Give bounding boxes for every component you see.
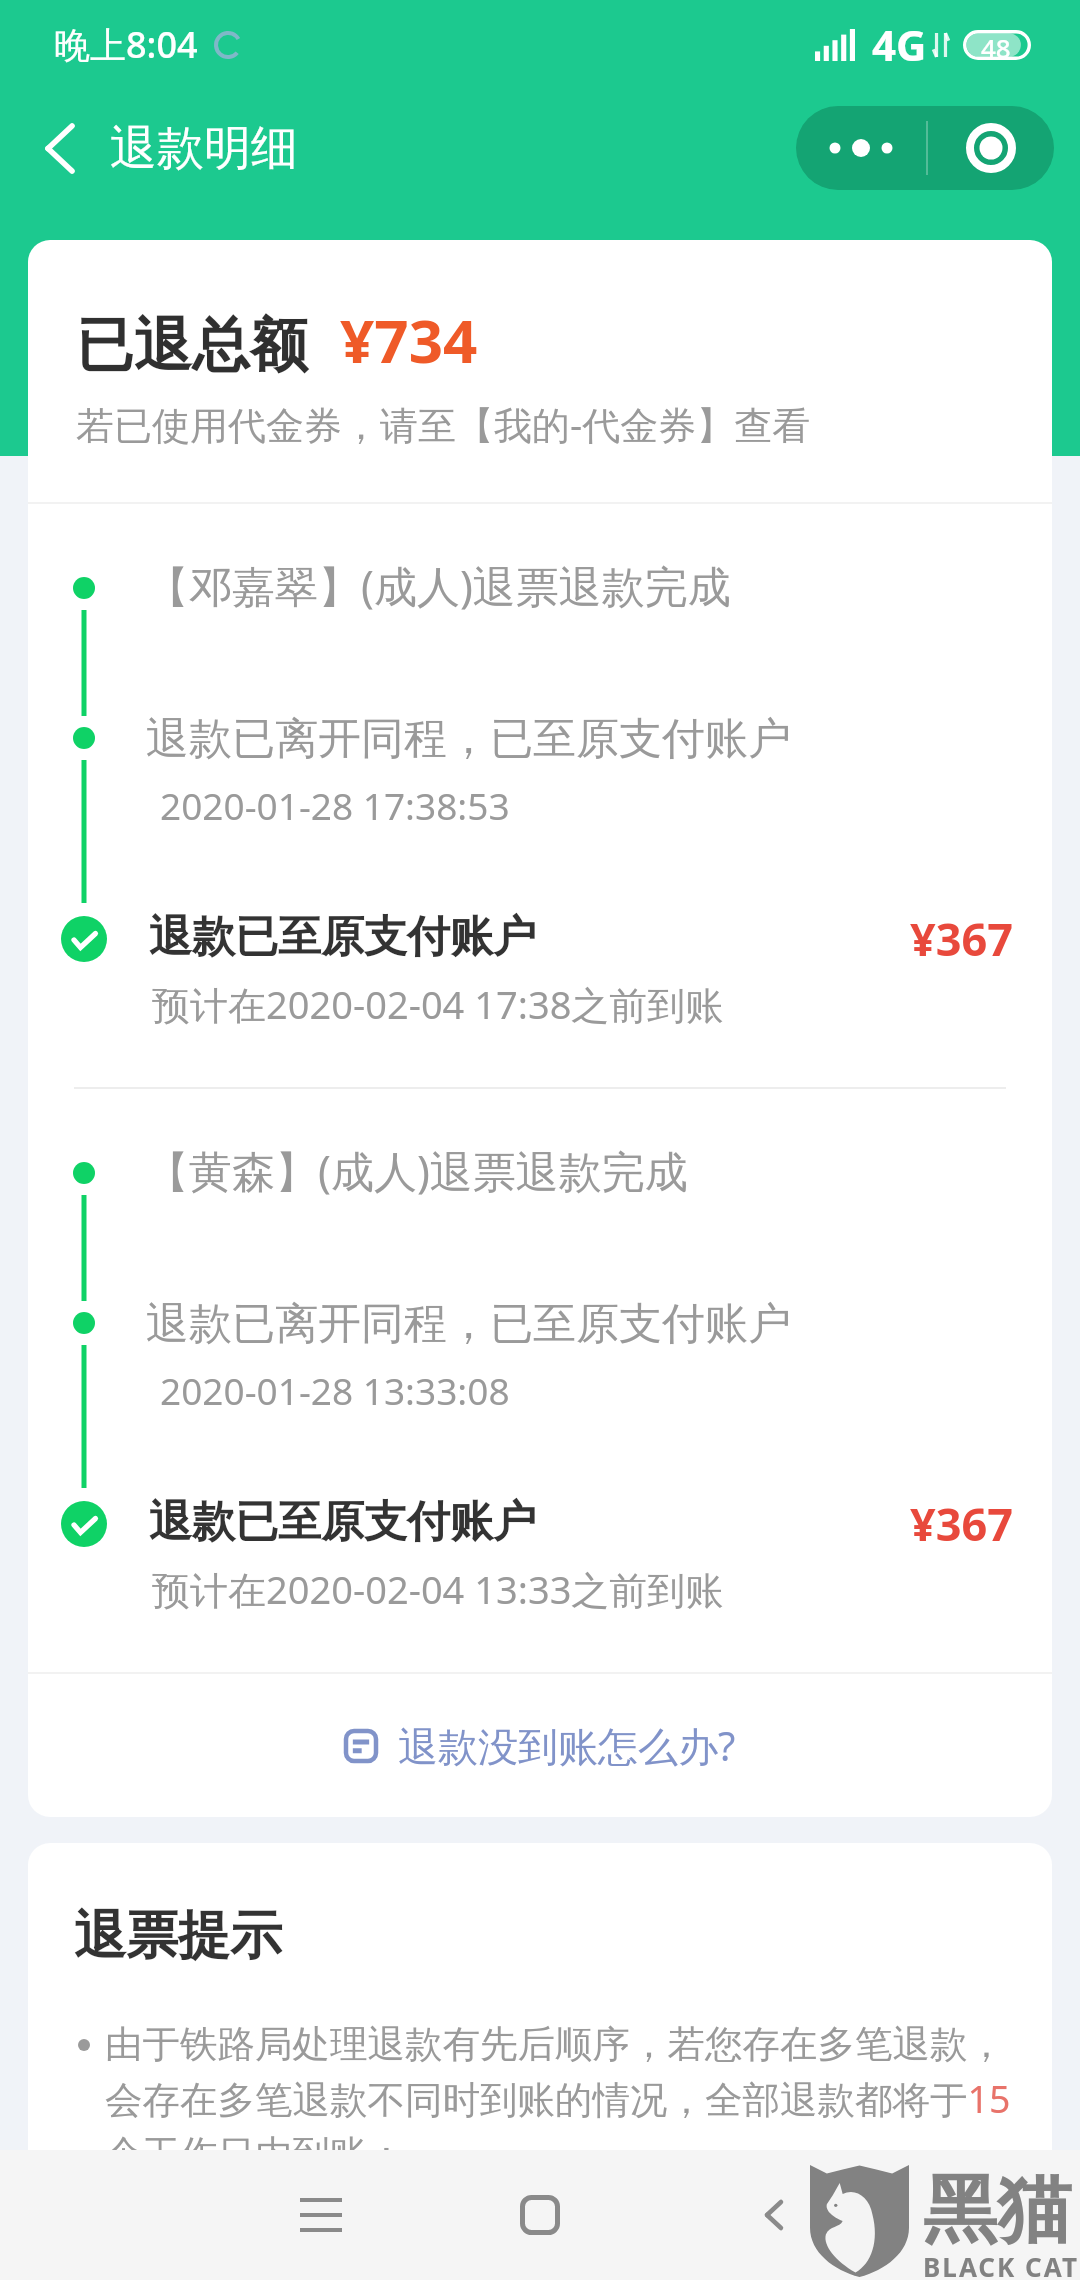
button[interactable]: 关闭 (928, 106, 1054, 190)
staticText: 退款已至原支付账户 (149, 910, 536, 964)
staticText: 【邓嘉翠】(成人)退票退款完成 (146, 556, 731, 615)
button[interactable]: 退款没到账怎么办? (28, 1674, 1052, 1817)
staticText: 退款已至原支付账户 (149, 1495, 536, 1549)
button[interactable]: 返回 (731, 2172, 817, 2258)
staticText: 由于铁路局处理退款有先后顺序，若您存在多笔退款，会存在多笔退款不同时到账的情况，… (105, 2021, 1015, 2178)
staticText: 【黄森】(成人)退票退款完成 (146, 1141, 688, 1200)
staticText: ¥367 (910, 1493, 1013, 1554)
button[interactable]: 主页 (497, 2172, 583, 2258)
staticText: BLACK CAT (923, 2249, 1079, 2280)
staticText: 退款已离开同程，已至原支付账户 (146, 1297, 791, 1351)
staticText: 2020-01-28 17:38:53 (160, 780, 510, 830)
button[interactable]: 更多 (796, 106, 926, 190)
button[interactable]: 最近任务 (278, 2172, 364, 2258)
staticText: ¥367 (910, 908, 1013, 969)
staticText: 预计在2020-02-04 13:33之前到账 (152, 1563, 724, 1615)
staticText: 退票提示 (74, 1903, 282, 1969)
staticText: 4G (872, 16, 927, 73)
staticText: 退款已离开同程，已至原支付账户 (146, 712, 791, 766)
staticText: 若已使用代金券，请至【我的-代金券】查看 (76, 398, 811, 450)
staticText: 晚上8:04 (54, 20, 198, 69)
staticText: 2020-01-28 13:33:08 (160, 1365, 510, 1415)
staticText: 预计在2020-02-04 17:38之前到账 (152, 978, 724, 1030)
staticText: 退款明细 (110, 119, 298, 178)
button[interactable]: 返回 (20, 108, 100, 188)
staticText: ¥734 (340, 299, 478, 381)
staticText: 48 (981, 30, 1011, 60)
staticText: 退款没到账怎么办? (398, 1718, 736, 1773)
staticText: 已退总额 (76, 309, 308, 382)
staticText: 黑猫 (923, 2164, 1071, 2257)
